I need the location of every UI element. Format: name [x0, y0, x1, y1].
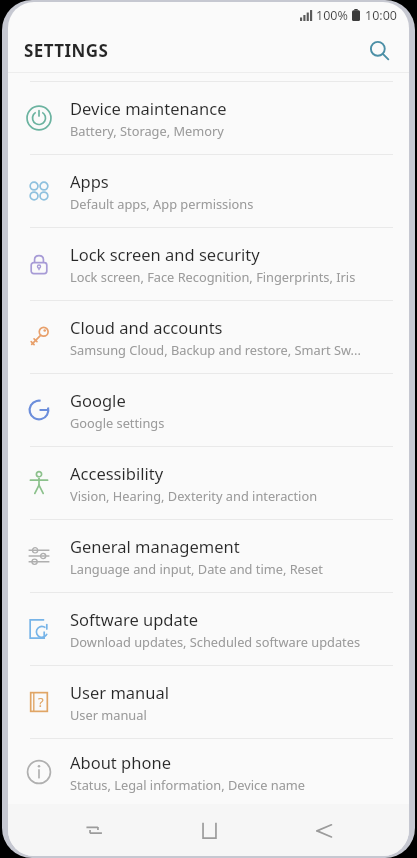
staticText: Default apps, App permissions — [70, 195, 254, 212]
button[interactable]: ? — [8, 666, 409, 738]
staticText: Accessibility — [70, 462, 164, 484]
button[interactable]: Home — [181, 804, 237, 856]
button[interactable]: Google — [8, 374, 409, 446]
staticText: Device maintenance — [70, 97, 227, 119]
button[interactable]: Accessibility — [8, 447, 409, 519]
button[interactable]: General management — [8, 520, 409, 592]
button[interactable]: About phone — [8, 739, 409, 804]
staticText: Apps — [70, 170, 109, 192]
button[interactable]: Lock screen and security — [8, 228, 409, 300]
staticText: General management — [70, 535, 240, 557]
staticText: User manual — [70, 706, 147, 723]
staticText: ? — [38, 693, 44, 711]
staticText: User manual — [70, 681, 169, 703]
staticText: Status, Legal information, Device name — [70, 776, 306, 793]
button[interactable]: Apps — [8, 155, 409, 227]
button[interactable]: Recents — [66, 804, 122, 856]
staticText: Software update — [70, 608, 198, 630]
button[interactable]: Cloud and accounts — [8, 301, 409, 373]
button[interactable]: Search — [359, 30, 399, 70]
button[interactable]: Software update — [8, 593, 409, 665]
staticText: Cloud and accounts — [70, 316, 223, 338]
staticText: Lock screen, Face Recognition, Fingerpri… — [70, 268, 356, 285]
staticText: Vision, Hearing, Dexterity and interacti… — [70, 487, 318, 504]
button[interactable]: Device maintenance — [8, 82, 409, 154]
button[interactable]: Back — [295, 804, 351, 856]
staticText: About phone — [70, 751, 171, 773]
staticText: Google settings — [70, 414, 165, 431]
staticText: Download updates, Scheduled software upd… — [70, 633, 361, 650]
staticText: Lock screen and security — [70, 243, 260, 265]
staticText: Language and input, Date and time, Reset — [70, 560, 323, 577]
staticText: SETTINGS — [24, 39, 109, 62]
staticText: Google — [70, 389, 126, 411]
staticText: Battery, Storage, Memory — [70, 122, 224, 139]
staticText: 100% — [316, 7, 348, 24]
staticText: Samsung Cloud, Backup and restore, Smart… — [70, 341, 361, 358]
staticText: 10:00 — [365, 7, 397, 24]
